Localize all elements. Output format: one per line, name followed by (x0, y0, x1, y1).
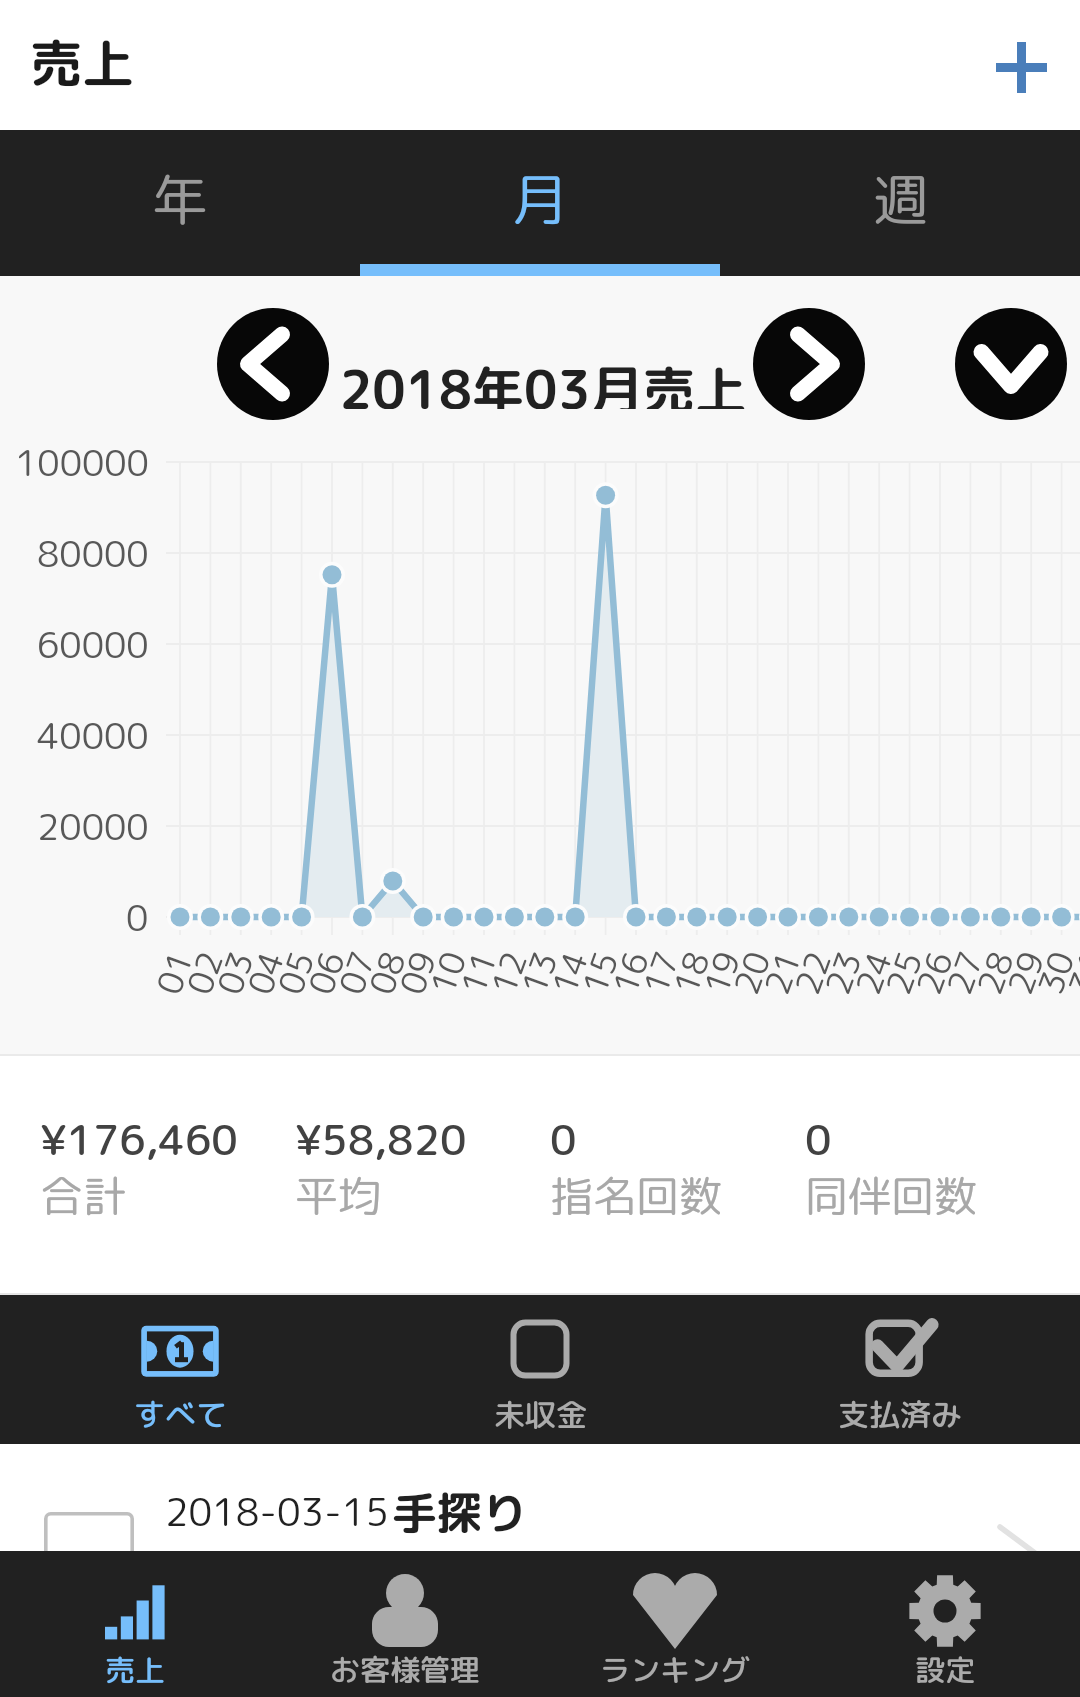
button[interactable]: Next month (753, 308, 865, 420)
staticText: ¥58,820 (295, 1110, 467, 1169)
staticText: 2018年03月売上 (339, 353, 747, 409)
button[interactable]: お客様管理 (270, 1551, 540, 1697)
staticText: 0 (805, 1110, 832, 1169)
button[interactable]: 支払済み (720, 1295, 1080, 1444)
staticText: 平均 (295, 1166, 381, 1226)
staticText: 2018-03-15 (165, 1485, 389, 1538)
button[interactable]: Add (976, 22, 1066, 112)
staticText: 同伴回数 (805, 1166, 977, 1226)
staticText: 未収金 (494, 1393, 587, 1436)
staticText: ランキング (600, 1649, 750, 1691)
button[interactable]: ランキング (540, 1551, 810, 1697)
staticText: すべて (134, 1393, 227, 1436)
button[interactable]: Previous month (217, 308, 329, 420)
staticText: お客様管理 (330, 1649, 480, 1691)
staticText: 合計 (40, 1166, 126, 1226)
staticText: 月 (512, 160, 568, 238)
button[interactable]: 2018-03-15 (0, 1444, 1080, 1551)
staticText: ¥176,460 (40, 1110, 238, 1169)
button[interactable]: 設定 (810, 1551, 1080, 1697)
button[interactable]: 年 (0, 130, 360, 276)
button[interactable]: ¥58,820 (295, 1110, 550, 1239)
button[interactable]: 月 (360, 130, 720, 276)
staticText: 売上 (30, 26, 135, 99)
button[interactable]: 0 (805, 1110, 1060, 1239)
staticText: 手探り (392, 1481, 528, 1544)
button[interactable]: 未収金 (360, 1295, 720, 1444)
button[interactable]: Expand (955, 308, 1067, 420)
staticText: 売上 (105, 1649, 165, 1691)
button[interactable]: 2018年03月売上 (339, 353, 747, 409)
staticText: 年 (152, 160, 208, 238)
staticText: 設定 (915, 1649, 975, 1691)
button[interactable]: 週 (720, 130, 1080, 276)
button[interactable]: 0 (550, 1110, 805, 1239)
button[interactable]: ¥176,460 (40, 1110, 295, 1239)
staticText: 0 (550, 1110, 577, 1169)
staticText: 週 (872, 160, 928, 238)
staticText: 指名回数 (550, 1166, 722, 1226)
button[interactable]: すべて (0, 1295, 360, 1444)
button[interactable]: 売上 (0, 1551, 270, 1697)
staticText: 支払済み (838, 1393, 962, 1436)
